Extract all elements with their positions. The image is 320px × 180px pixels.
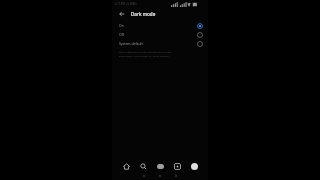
button[interactable]: Camera <box>172 161 182 171</box>
button[interactable]: On <box>112 21 208 30</box>
staticText: On <box>119 23 124 28</box>
button[interactable]: Search <box>138 161 148 171</box>
button[interactable]: Off <box>112 30 208 39</box>
button[interactable]: System default <box>112 39 208 48</box>
staticText: 4:17 PM | 0.0KB/s <box>115 2 137 6</box>
button[interactable]: Home <box>121 161 131 171</box>
button[interactable]: Profile <box>189 161 199 171</box>
staticText: System default <box>119 41 143 46</box>
staticText: Dark theme uses a black background to he… <box>119 50 172 53</box>
staticText: Off <box>119 32 124 37</box>
staticText: keep battery alive longer on some screen… <box>119 54 170 57</box>
button[interactable]: Back <box>117 9 126 18</box>
button[interactable]: Messages <box>155 161 165 171</box>
staticText: Dark mode <box>131 11 156 17</box>
